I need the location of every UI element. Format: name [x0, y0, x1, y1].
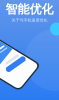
staticText: 智能优化	[5, 2, 53, 17]
staticText: 关于与手机速度优化	[11, 18, 47, 23]
